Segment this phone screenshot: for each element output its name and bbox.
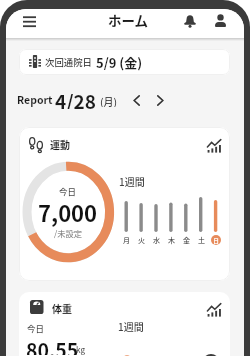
button[interactable]: 体重 <box>19 292 230 356</box>
staticText: /未設定 <box>54 227 83 239</box>
staticText: 月 <box>123 235 130 245</box>
staticText: 今日 <box>27 322 45 334</box>
button[interactable]: 運動 <box>19 127 230 281</box>
button[interactable] <box>151 91 169 109</box>
staticText: ホーム <box>108 10 149 30</box>
staticText: 7,000 <box>38 196 98 228</box>
staticText: 火 <box>138 235 145 245</box>
staticText: 1週間 <box>118 319 144 332</box>
button[interactable] <box>208 9 232 31</box>
staticText: 水 <box>153 235 160 245</box>
staticText: (月) <box>100 94 118 107</box>
button[interactable] <box>127 91 145 109</box>
button[interactable]: 次回通院日 <box>19 49 230 75</box>
staticText: 体重 <box>52 301 72 315</box>
staticText: 今日 <box>59 185 77 197</box>
button[interactable] <box>18 10 42 32</box>
staticText: 金 <box>183 235 190 245</box>
staticText: 80.55 <box>26 335 79 355</box>
staticText: 日 <box>213 236 220 245</box>
staticText: 1週間 <box>119 174 145 188</box>
staticText: 4/28 <box>55 87 96 109</box>
staticText: 土 <box>198 235 205 245</box>
staticText: 5/9 (金) <box>96 53 143 72</box>
button[interactable] <box>178 9 201 31</box>
staticText: Report <box>17 92 53 107</box>
staticText: 木 <box>168 235 175 245</box>
staticText: 運動 <box>50 137 70 151</box>
staticText: 次回通院日 <box>45 55 92 69</box>
staticText: kg <box>76 344 86 356</box>
